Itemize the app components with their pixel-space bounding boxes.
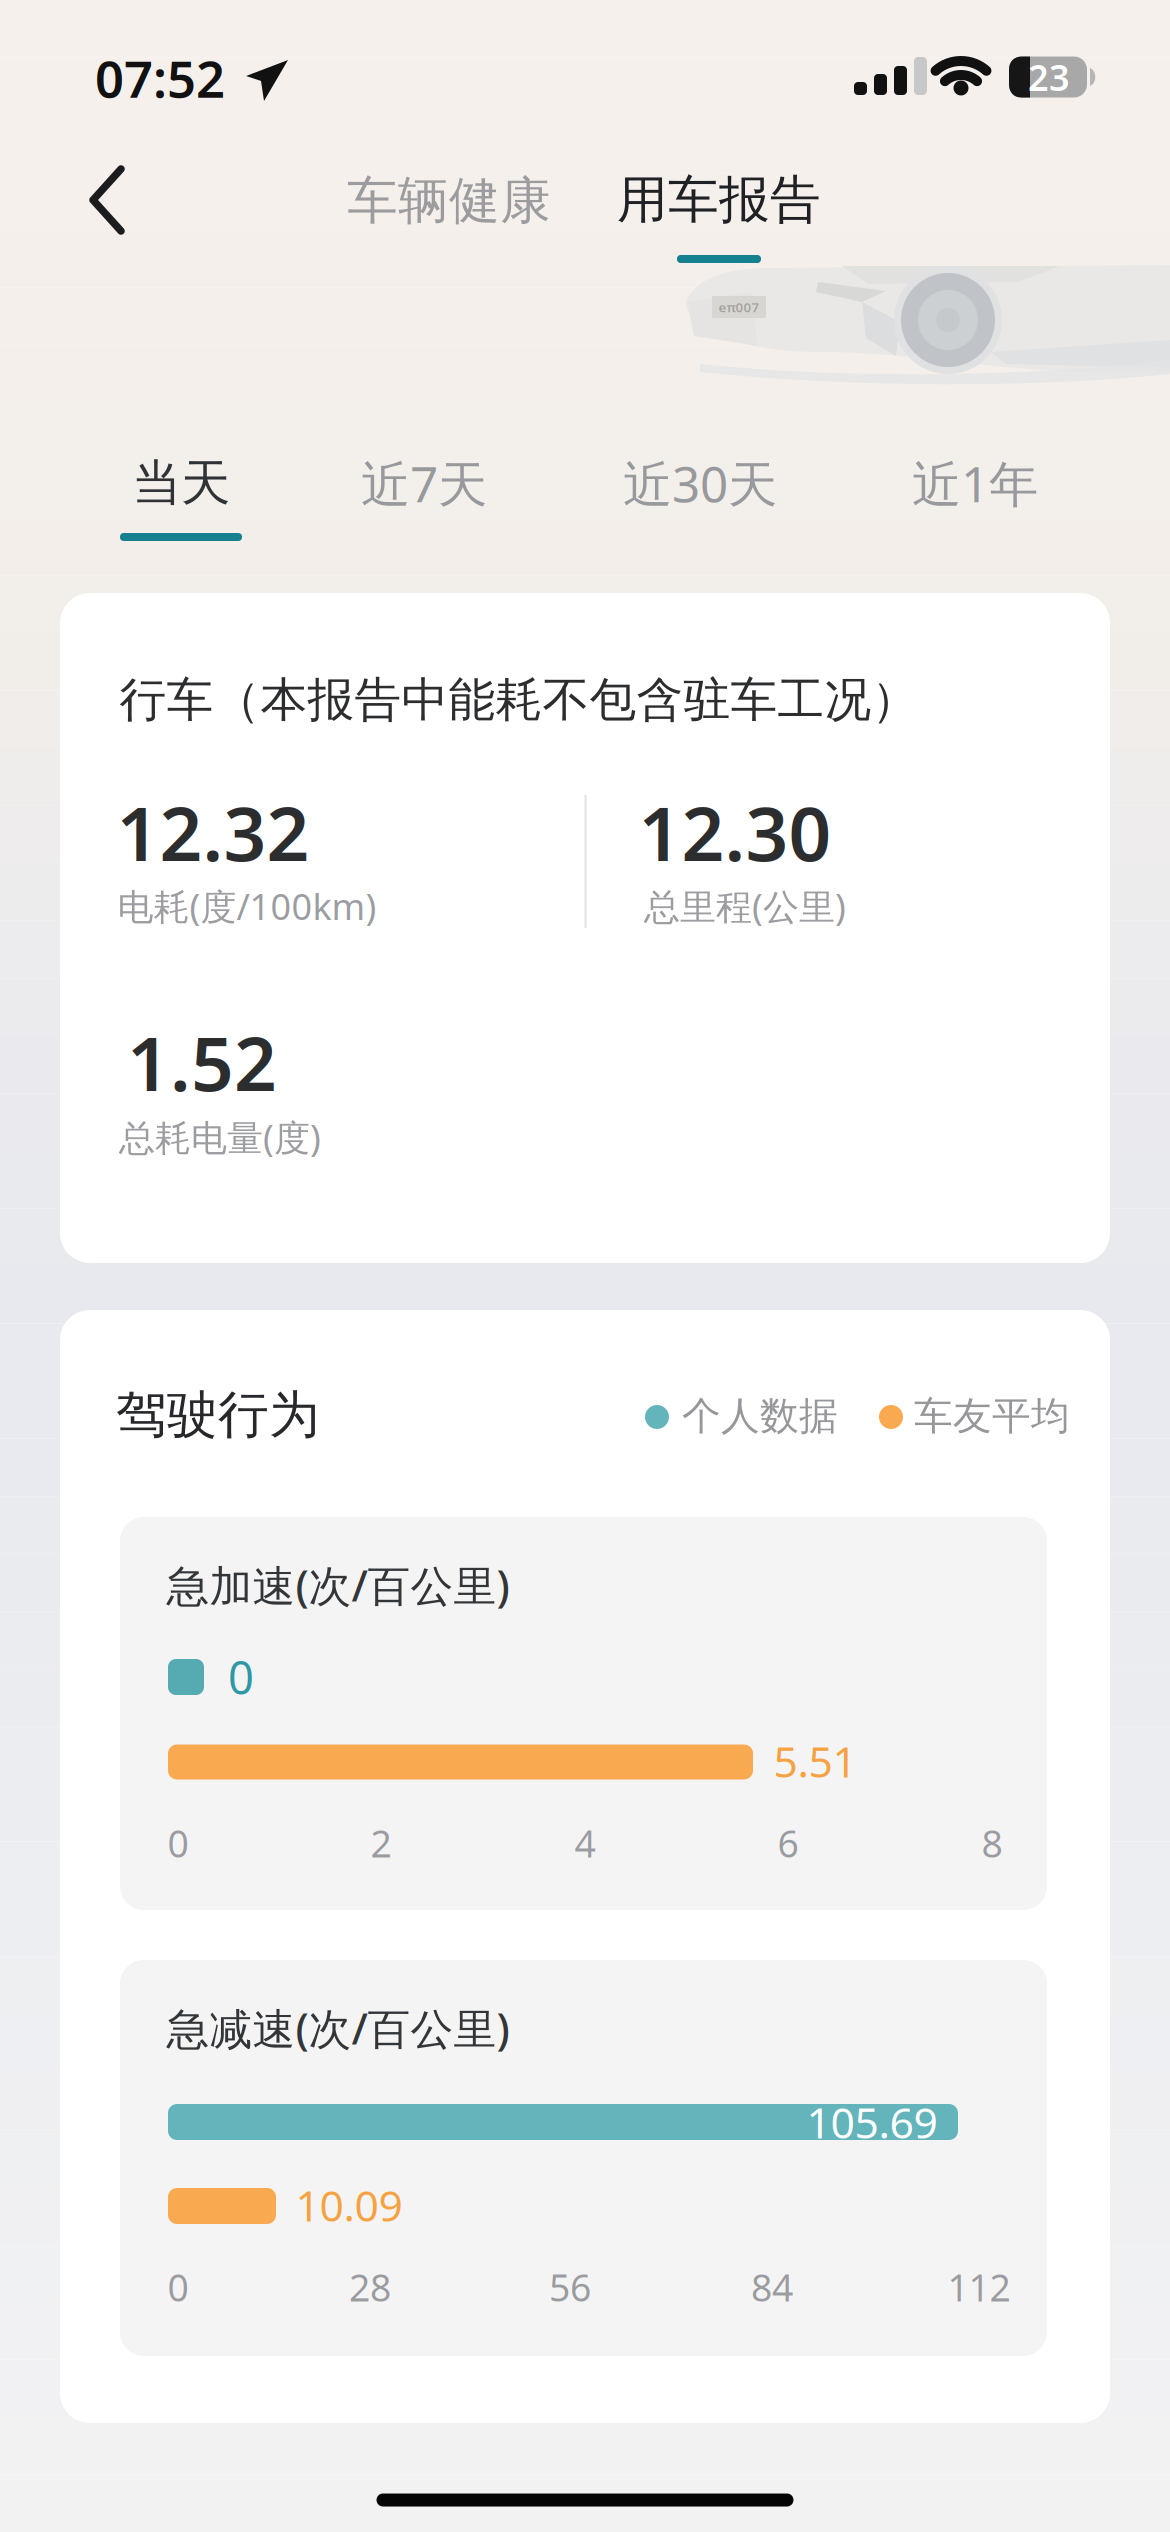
staticText: 28: [349, 2262, 391, 2312]
staticText: 0: [228, 1647, 254, 1707]
staticText: 电耗(度/100km): [117, 882, 376, 930]
staticText: 急减速(次/百公里): [166, 2000, 509, 2056]
staticText: 84: [751, 2262, 793, 2312]
staticText: 12.30: [638, 782, 831, 882]
staticText: 07:52: [95, 44, 225, 112]
button[interactable]: 近7天: [361, 450, 487, 516]
button[interactable]: 当天: [115, 454, 247, 542]
staticText: 4: [574, 1818, 595, 1868]
button[interactable]: 用车报告: [619, 154, 819, 264]
staticText: 行车（本报告中能耗不包含驻车工况）: [119, 671, 918, 729]
staticText: 总耗电量(度): [119, 1113, 321, 1161]
button[interactable]: 车辆健康: [347, 170, 551, 232]
button[interactable]: Back: [88, 165, 126, 235]
staticText: 近1年: [912, 450, 1038, 516]
staticText: 6: [777, 1818, 798, 1868]
staticText: 2: [370, 1818, 391, 1868]
button[interactable]: 近1年: [912, 450, 1038, 516]
staticText: 56: [549, 2262, 591, 2312]
staticText: 8: [981, 1818, 1002, 1868]
staticText: 用车报告: [617, 169, 821, 231]
staticText: 近7天: [361, 450, 487, 516]
staticText: 105.69: [806, 2094, 937, 2150]
staticText: 1.52: [127, 1012, 277, 1112]
staticText: eπ007: [718, 298, 759, 316]
staticText: 车辆健康: [347, 170, 551, 232]
staticText: 急加速(次/百公里): [166, 1557, 509, 1613]
staticText: 12.32: [116, 782, 309, 882]
staticText: 总里程(公里): [644, 882, 846, 930]
staticText: 近30天: [623, 450, 777, 516]
staticText: 车友平均: [914, 1392, 1070, 1440]
staticText: 10.09: [295, 2177, 402, 2233]
staticText: 5.51: [773, 1733, 856, 1789]
staticText: 0: [167, 1818, 188, 1868]
staticText: 23: [1028, 53, 1070, 101]
staticText: 驾驶行为: [116, 1384, 320, 1446]
staticText: 0: [167, 2262, 188, 2312]
button[interactable]: 近30天: [623, 450, 777, 516]
staticText: 当天: [132, 453, 230, 513]
staticText: 112: [947, 2262, 1010, 2312]
staticText: 个人数据: [682, 1392, 838, 1440]
